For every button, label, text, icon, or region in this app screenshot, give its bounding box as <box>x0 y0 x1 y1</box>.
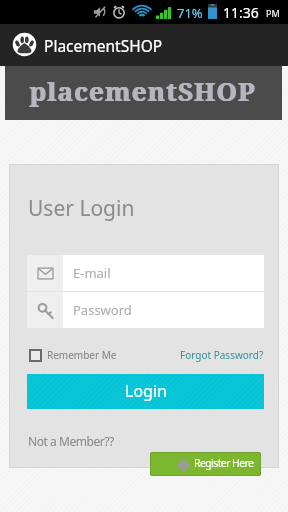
staticText: Password <box>73 301 132 319</box>
other: Silent mode <box>93 5 107 19</box>
button[interactable]: Register Here <box>150 452 261 476</box>
button[interactable]: E-mail <box>63 255 264 291</box>
staticText: Not a Member?? <box>28 433 114 449</box>
button[interactable]: Login <box>27 374 264 409</box>
other: Alarm <box>112 5 126 19</box>
staticText: PlacementSHOP <box>44 35 163 56</box>
staticText: placementSHOP <box>29 73 256 108</box>
staticText: Remember Me <box>47 348 117 362</box>
staticText: Login <box>125 380 167 402</box>
other: Battery <box>208 4 217 19</box>
staticText: placementSHOP <box>30 73 257 108</box>
button[interactable]: Password <box>63 292 264 328</box>
other: App logo <box>12 32 37 57</box>
staticText: Register Here <box>194 456 254 470</box>
button[interactable]: Remember Me <box>29 348 117 362</box>
staticText: PM <box>266 7 280 19</box>
button[interactable]: Forgot Password? <box>180 348 264 362</box>
other: Signal strength <box>156 5 172 19</box>
staticText: User Login <box>28 194 135 223</box>
staticText: 11:36 <box>223 3 259 22</box>
staticText: 71% <box>177 4 203 22</box>
staticText: E-mail <box>73 264 111 282</box>
other: Wi-Fi <box>133 5 151 19</box>
